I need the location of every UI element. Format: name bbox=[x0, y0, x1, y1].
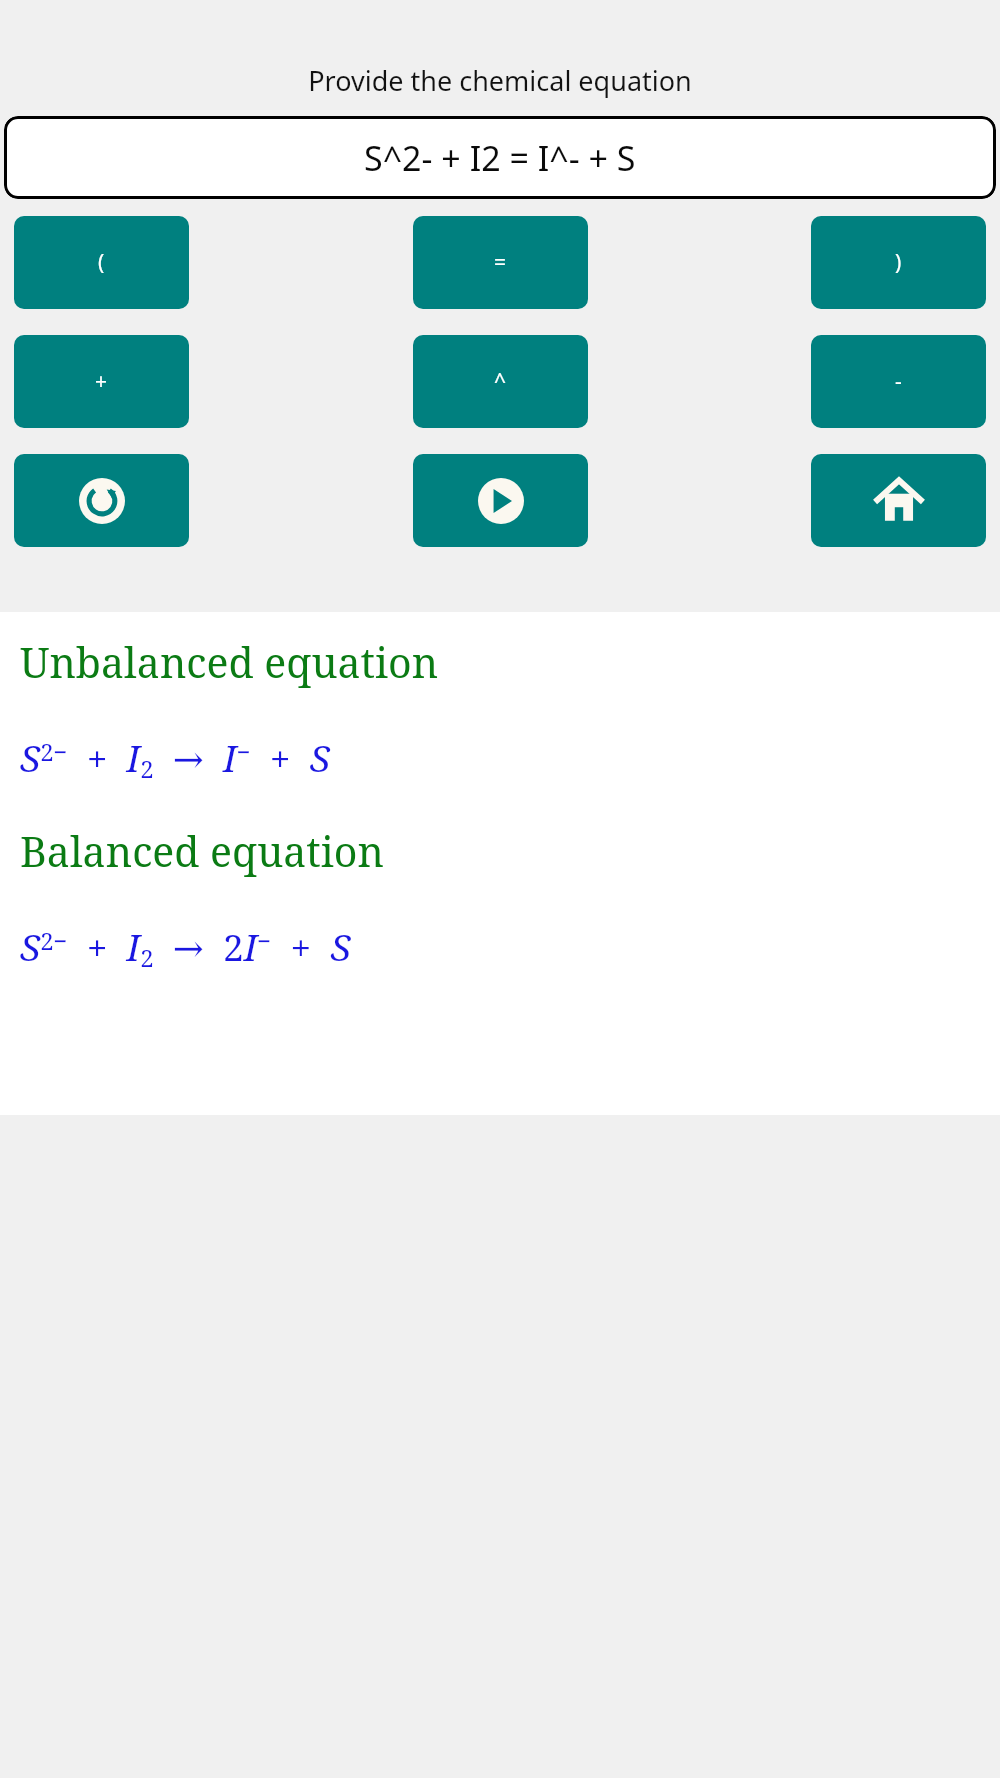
button[interactable]: ^ bbox=[413, 335, 588, 428]
button[interactable]: = bbox=[413, 216, 588, 309]
button[interactable]: Home bbox=[811, 454, 986, 547]
staticText: S2− + I2 → 2I− + S bbox=[20, 921, 351, 974]
staticText: ) bbox=[895, 248, 902, 277]
staticText: - bbox=[895, 367, 902, 396]
staticText: = bbox=[494, 248, 507, 277]
button[interactable]: Reset bbox=[14, 454, 189, 547]
staticText: + bbox=[95, 367, 108, 396]
button[interactable]: ) bbox=[811, 216, 986, 309]
button[interactable]: + bbox=[14, 335, 189, 428]
button[interactable]: ( bbox=[14, 216, 189, 309]
button[interactable]: S^2- + I2 = I^- + S bbox=[4, 116, 996, 199]
staticText: ( bbox=[98, 248, 105, 277]
staticText: S^2- + I2 = I^- + S bbox=[364, 135, 636, 181]
staticText: Provide the chemical equation bbox=[0, 62, 1000, 99]
button[interactable]: - bbox=[811, 335, 986, 428]
staticText: S2− + I2 → I− + S bbox=[20, 732, 330, 785]
staticText: Balanced equation bbox=[20, 823, 384, 879]
staticText: ^ bbox=[494, 367, 507, 396]
button[interactable]: Solve bbox=[413, 454, 588, 547]
staticText: Unbalanced equation bbox=[20, 634, 439, 690]
